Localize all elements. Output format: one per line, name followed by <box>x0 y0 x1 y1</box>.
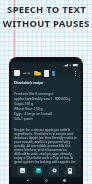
button[interactable]: Recents <box>63 179 66 182</box>
button[interactable] <box>23 71 31 76</box>
button[interactable]: Info <box>52 71 55 76</box>
staticText: Eggs - 4 large or 5 small <box>14 111 52 116</box>
staticText: Products (for 6 servings) <box>14 91 53 96</box>
button[interactable]: Back <box>26 179 29 182</box>
button[interactable]: New document <box>44 70 49 77</box>
button[interactable]: Save <box>65 166 75 175</box>
button[interactable]: Keyboard <box>17 166 27 175</box>
button[interactable]: Folder <box>34 70 41 76</box>
staticText: Wheat flour-150 g <box>14 106 43 111</box>
button[interactable]: More options <box>72 69 78 78</box>
button[interactable]: Microphone <box>33 166 43 175</box>
staticText: Recipe for a classic apple pie with 5 in… <box>14 127 78 164</box>
staticText: SPEECH TO TEXT <box>7 3 86 16</box>
staticText: Salt-1 pinch <box>14 116 33 121</box>
staticText: Charlotte's recipe <box>14 80 44 85</box>
staticText: apples (preferably sour) - 500-600 g <box>14 96 71 101</box>
button[interactable]: Home <box>45 179 48 182</box>
button[interactable]: Settings <box>49 166 59 175</box>
staticText: WITHOUT PAUSES <box>2 17 90 30</box>
button[interactable]: Documents <box>14 70 20 76</box>
staticText: Sugar-150 g <box>14 101 34 106</box>
